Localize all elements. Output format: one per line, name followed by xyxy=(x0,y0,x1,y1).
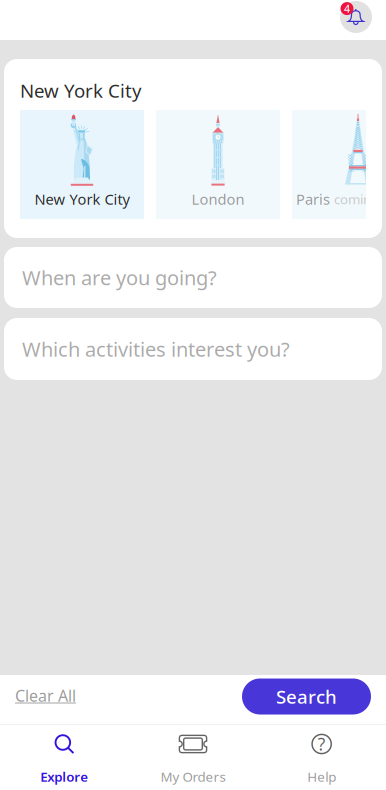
staticText: When are you going? xyxy=(22,264,217,291)
button[interactable]: Explore xyxy=(0,725,129,790)
button[interactable]: New York City xyxy=(20,110,144,219)
button[interactable]: Clear All xyxy=(15,677,76,715)
staticText: ? xyxy=(318,732,326,755)
staticText: Clear All xyxy=(15,685,76,706)
staticText: Paris xyxy=(296,189,330,209)
button[interactable]: When are you going? xyxy=(4,247,382,308)
staticText: London xyxy=(191,189,244,209)
staticText: New York City xyxy=(20,78,142,103)
button[interactable]: London xyxy=(156,110,280,219)
button[interactable]: Paris xyxy=(292,110,386,219)
button[interactable]: My Orders xyxy=(129,725,257,790)
button[interactable]: Search xyxy=(242,678,371,714)
staticText: Explore xyxy=(40,768,88,785)
button[interactable]: Which activities interest you? xyxy=(4,318,382,380)
staticText: Which activities interest you? xyxy=(22,336,290,362)
staticText: coming soon xyxy=(334,190,386,208)
staticText: 4 xyxy=(344,1,350,16)
staticText: Search xyxy=(276,684,337,709)
staticText: Help xyxy=(307,768,336,785)
staticText: My Orders xyxy=(160,768,225,785)
button[interactable]: Notifications xyxy=(337,0,375,36)
button[interactable]: ? xyxy=(257,725,386,790)
staticText: New York City xyxy=(34,189,129,209)
